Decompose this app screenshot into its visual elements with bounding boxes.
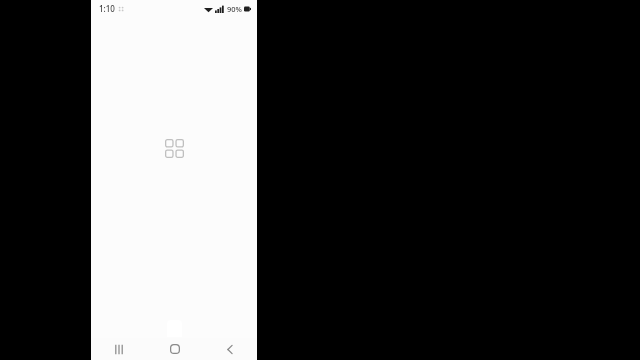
button[interactable]: Recent apps: [91, 338, 147, 360]
button[interactable]: Apps: [161, 135, 187, 161]
button[interactable]: Home: [147, 338, 202, 360]
staticText: 90%: [227, 4, 242, 14]
button[interactable]: Back: [202, 338, 257, 360]
staticText: 1:10: [99, 3, 115, 14]
